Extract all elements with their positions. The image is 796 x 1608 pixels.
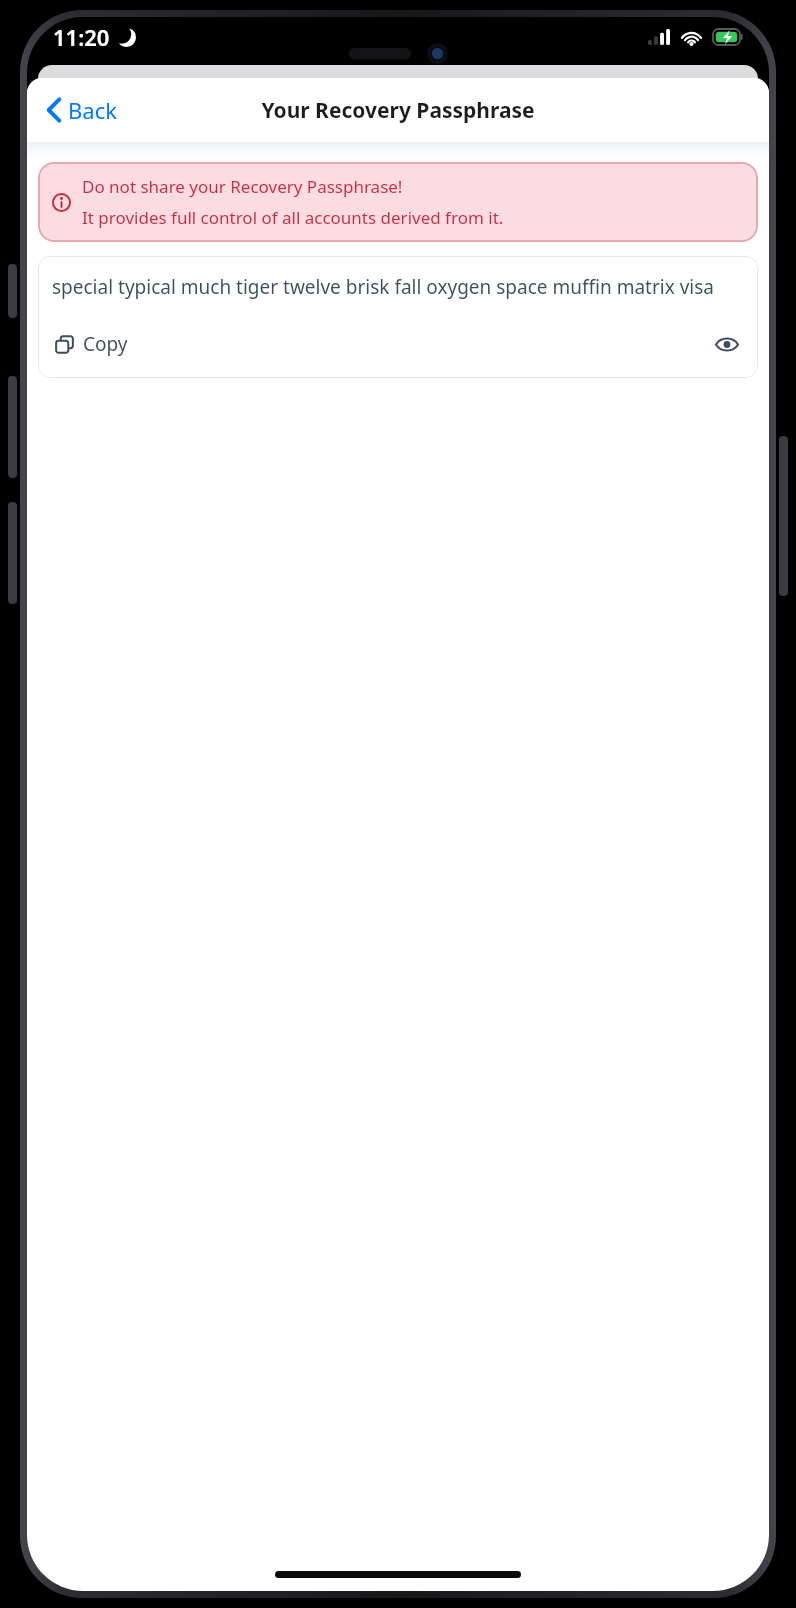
staticText: Do not share your Recovery Passphrase!	[82, 175, 403, 198]
button[interactable]: Back	[39, 89, 125, 131]
staticText: special typical much tiger twelve brisk …	[52, 274, 714, 300]
staticText: Copy	[83, 331, 128, 357]
button[interactable]: Show passphrase	[710, 331, 744, 358]
button[interactable]: Copy	[52, 328, 131, 360]
staticText: 11:20	[53, 22, 110, 52]
staticText: It provides full control of all accounts…	[82, 206, 504, 229]
staticText: Back	[68, 95, 117, 125]
staticText: Your Recovery Passphrase	[261, 96, 535, 125]
button[interactable]: Do not share your Recovery Passphrase!	[38, 162, 758, 242]
